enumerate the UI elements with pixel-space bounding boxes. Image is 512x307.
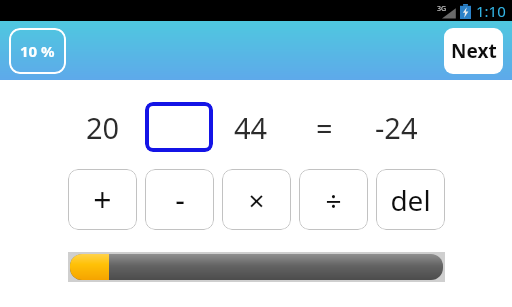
staticText: - bbox=[175, 179, 185, 220]
button[interactable]: Minus bbox=[145, 169, 214, 230]
staticText: = bbox=[316, 108, 333, 147]
button[interactable]: Multiply bbox=[222, 169, 291, 230]
staticText: × bbox=[248, 181, 265, 219]
staticText: 3G bbox=[437, 4, 447, 14]
button[interactable]: Answer slot bbox=[145, 102, 213, 152]
staticText: 20 bbox=[86, 108, 120, 147]
staticText: del bbox=[390, 181, 431, 219]
button[interactable]: Next bbox=[444, 28, 503, 74]
staticText: ÷ bbox=[325, 181, 342, 219]
button[interactable]: Plus bbox=[68, 169, 137, 230]
button[interactable]: del bbox=[376, 169, 445, 230]
staticText: 10 % bbox=[20, 41, 55, 61]
staticText: -24 bbox=[375, 108, 418, 147]
staticText: + bbox=[93, 178, 112, 222]
staticText: Next bbox=[451, 38, 497, 64]
staticText: 1:10 bbox=[476, 1, 506, 21]
button[interactable]: 10 % bbox=[9, 28, 66, 74]
button[interactable]: Divide bbox=[299, 169, 368, 230]
staticText: 44 bbox=[234, 108, 268, 147]
